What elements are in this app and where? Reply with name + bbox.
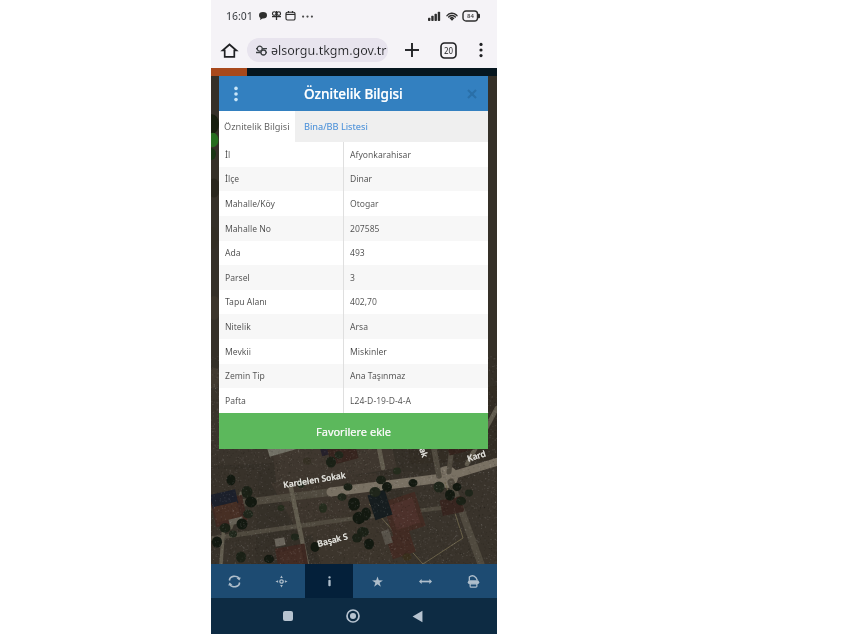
staticText: Pafta [225, 395, 246, 407]
staticText: Ada [225, 247, 241, 259]
staticText: Öznitelik Bilgisi [224, 120, 290, 133]
staticText: Başak S [316, 530, 350, 550]
staticText: Arsa [350, 321, 368, 333]
staticText: ǝlsorgu.tkgm.gov.tr [271, 42, 387, 59]
button[interactable]: Öznitelik Bilgisi [224, 111, 290, 142]
staticText: Ana Taşınmaz [350, 370, 406, 382]
staticText: 493 [350, 247, 365, 259]
staticText: Miskinler [350, 346, 387, 358]
button[interactable]: star [353, 564, 401, 598]
staticText: 16:01 [226, 9, 253, 23]
staticText: 20 [444, 45, 454, 56]
button[interactable]: refresh [211, 564, 258, 598]
staticText: L24-D-19-D-4-A [350, 395, 411, 407]
staticText: 207585 [350, 223, 380, 235]
button[interactable]: info [305, 564, 353, 598]
staticText: 84 [467, 12, 474, 20]
button[interactable]: locate [258, 564, 305, 598]
staticText: Sokak [412, 432, 431, 460]
staticText: Dinar [350, 173, 373, 185]
button[interactable]: New tab [400, 38, 424, 62]
staticText: Mevkii [225, 346, 251, 358]
staticText: Mahalle/Köy [225, 198, 275, 210]
button[interactable]: Recents [273, 598, 303, 634]
staticText: 3 [350, 272, 355, 284]
button[interactable]: More options [472, 39, 490, 61]
button[interactable]: Home [219, 37, 239, 63]
staticText: İl [225, 149, 231, 161]
button[interactable]: Favorilere ekle [219, 413, 488, 449]
button[interactable]: Tabs [436, 38, 460, 62]
staticText: Mahalle No [225, 223, 271, 235]
staticText: 402,70 [350, 296, 377, 308]
staticText: Kard [466, 447, 487, 464]
staticText: Öznitelik Bilgisi [304, 85, 403, 103]
staticText: Nitelik [225, 321, 251, 333]
staticText: Afyonkarahisar [350, 149, 411, 161]
staticText: İlçe [225, 173, 240, 185]
staticText: Otogar [350, 198, 379, 210]
button[interactable]: measure [401, 564, 449, 598]
staticText: Bina/BB Listesi [304, 120, 368, 133]
button[interactable]: ǝlsorgu.tkgm.gov.tr [247, 38, 388, 62]
staticText: Kardelen Sokak [282, 469, 346, 491]
staticText: Zemin Tip [225, 370, 265, 382]
button[interactable]: Home [338, 598, 368, 634]
staticText: Tapu Alanı [225, 296, 267, 308]
staticText: Favorilere ekle [316, 424, 392, 439]
button[interactable]: print [449, 564, 497, 598]
button[interactable]: Back [402, 598, 432, 634]
button[interactable]: Bina/BB Listesi [304, 111, 368, 142]
button[interactable]: Menu [226, 84, 246, 104]
button[interactable]: Close [463, 85, 481, 103]
staticText: Parsel [225, 272, 250, 284]
